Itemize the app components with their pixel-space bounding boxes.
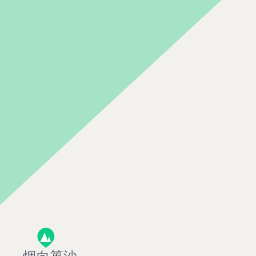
button[interactable]: Scenic spot marker <box>33 224 59 250</box>
button[interactable]: 烟向箅沙 <box>23 248 77 256</box>
